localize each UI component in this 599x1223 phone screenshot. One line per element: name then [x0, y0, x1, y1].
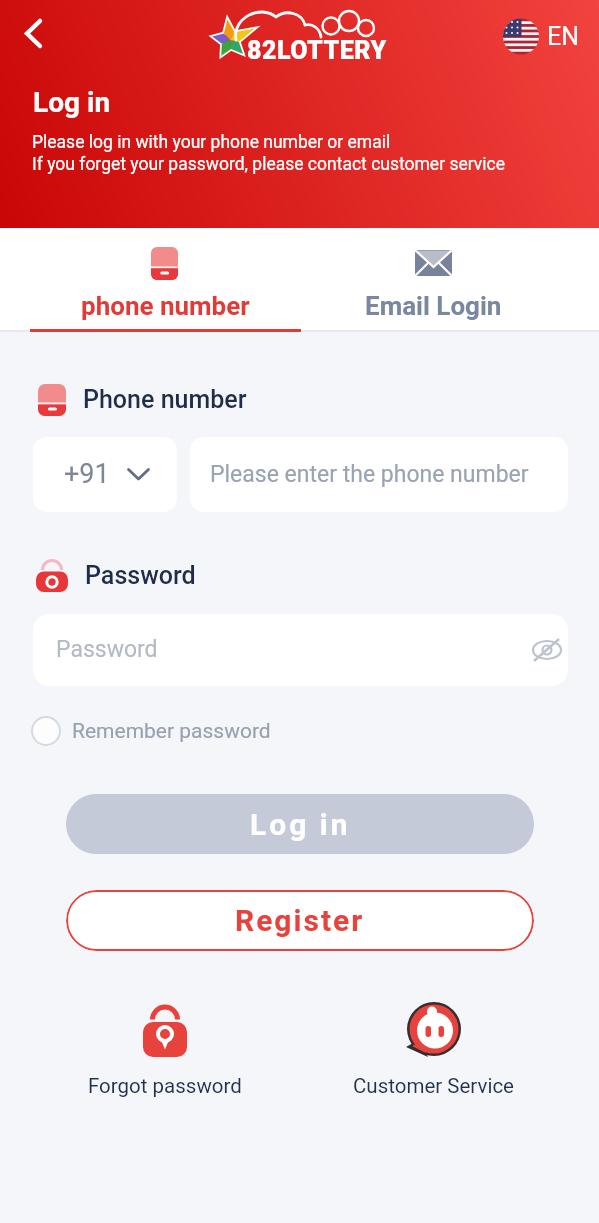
staticText: EN — [547, 22, 580, 51]
button[interactable]: Register — [66, 890, 534, 951]
button[interactable]: Log in — [66, 794, 534, 854]
button[interactable]: Remember password — [30, 714, 290, 748]
button[interactable]: Password — [33, 614, 568, 686]
button[interactable]: phone number — [30, 228, 301, 332]
staticText: Log in — [250, 807, 351, 842]
button[interactable]: EN — [496, 12, 591, 60]
staticText: Please enter the phone number — [210, 461, 529, 488]
button[interactable]: Please enter the phone number — [190, 437, 568, 512]
staticText: Log in — [33, 86, 111, 119]
staticText: Email Login — [365, 291, 502, 321]
button[interactable] — [16, 14, 52, 50]
staticText: Register — [235, 903, 365, 938]
staticText: Password — [56, 636, 158, 663]
staticText: 82LOTTERY — [247, 36, 387, 65]
staticText: phone number — [81, 291, 250, 321]
button[interactable] — [95, 995, 235, 1105]
button[interactable]: Email Login — [301, 228, 569, 332]
staticText: +91 — [64, 458, 110, 490]
button[interactable]: +91 — [33, 437, 177, 512]
staticText: Phone number — [83, 385, 247, 414]
staticText: If you forget your password, please cont… — [32, 154, 505, 175]
staticText: Forgot password — [88, 1074, 242, 1098]
staticText: Remember password — [72, 719, 271, 744]
staticText: Password — [85, 561, 196, 590]
staticText: Customer Service — [353, 1074, 514, 1098]
button[interactable] — [363, 995, 503, 1105]
staticText: Please log in with your phone number or … — [32, 132, 391, 153]
